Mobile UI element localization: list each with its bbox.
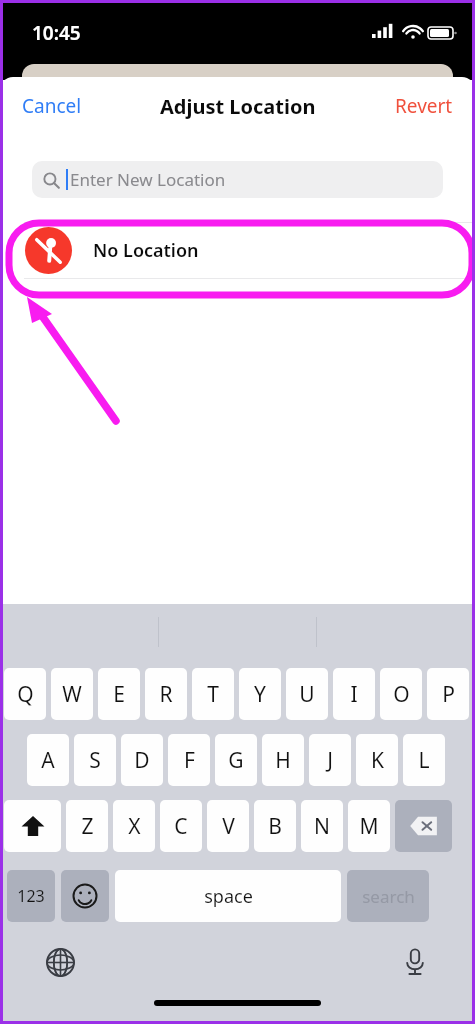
button[interactable]: X [113,800,155,852]
staticText: M [359,812,379,841]
button[interactable] [4,800,61,852]
button[interactable]: Revert [385,87,463,125]
button[interactable]: I [333,668,375,720]
button[interactable]: No Location [0,223,475,278]
staticText: J [327,746,333,775]
staticText: Adjust Location [160,93,316,120]
button[interactable]: Q [4,668,46,720]
staticText: 10:45 [32,20,81,46]
button[interactable]: S [74,734,116,786]
staticText: X [128,812,141,841]
button[interactable]: Change keyboard language [40,942,80,982]
staticText: W [62,680,82,709]
button[interactable]: M [348,800,390,852]
staticText: Enter New Location [70,168,226,191]
staticText: E [113,680,125,709]
button[interactable]: F [168,734,210,786]
staticText: C [174,812,188,841]
staticText: U [299,680,315,709]
button[interactable]: K [356,734,398,786]
button[interactable]: C [160,800,202,852]
button[interactable]: Z [66,800,108,852]
staticText: Cancel [22,93,82,119]
button[interactable]: Cancel [12,87,92,125]
button[interactable]: W [51,668,93,720]
button[interactable]: H [262,734,304,786]
staticText: K [371,746,384,775]
button[interactable]: D [121,734,163,786]
button[interactable]: B [254,800,296,852]
staticText: No Location [93,238,199,263]
button[interactable]: R [145,668,187,720]
staticText: A [41,746,55,775]
button[interactable] [61,870,109,922]
staticText: O [393,680,410,709]
staticText: R [159,680,173,709]
button[interactable] [395,800,452,852]
staticText: N [314,812,330,841]
button[interactable]: G [215,734,257,786]
staticText: I [350,680,358,709]
staticText: Y [254,680,266,709]
button[interactable]: E [98,668,140,720]
button[interactable]: Enter New Location [32,161,443,198]
staticText: 123 [17,885,45,907]
staticText: P [442,680,455,709]
staticText: Q [17,680,34,709]
button[interactable]: V [207,800,249,852]
button[interactable]: J [309,734,351,786]
button[interactable]: space [115,870,341,922]
button[interactable]: U [286,668,328,720]
staticText: B [268,812,282,841]
staticText: G [228,746,244,775]
staticText: V [222,812,235,841]
button[interactable]: P [427,668,469,720]
staticText: T [207,680,219,709]
staticText: S [89,746,101,775]
button[interactable]: search [347,870,429,922]
staticText: D [134,746,150,775]
staticText: space [204,884,253,909]
staticText: Revert [395,93,453,119]
button[interactable]: A [27,734,69,786]
button[interactable]: L [403,734,445,786]
staticText: H [275,746,291,775]
button[interactable]: Dictate [395,942,435,982]
staticText: Z [81,812,94,841]
staticText: F [184,746,195,775]
staticText: L [418,746,430,775]
button[interactable]: T [192,668,234,720]
staticText: search [362,885,415,908]
button[interactable]: O [380,668,422,720]
button[interactable]: 123 [7,870,55,922]
button[interactable]: Y [239,668,281,720]
button[interactable]: N [301,800,343,852]
